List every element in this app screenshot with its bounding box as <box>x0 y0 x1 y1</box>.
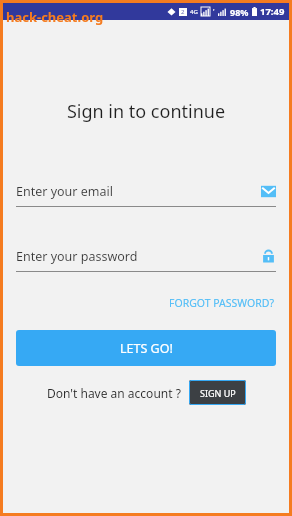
staticText: hack-cheat.org <box>6 8 104 26</box>
staticText: 2 <box>181 8 185 16</box>
staticText: SIGN UP <box>200 387 236 399</box>
staticText: FORGOT PASSWORD? <box>169 296 274 310</box>
button[interactable]: LETS GO! <box>16 330 276 366</box>
staticText: 17:49 <box>260 5 285 18</box>
other: Email <box>261 184 276 199</box>
staticText: Don't have an account ? <box>47 385 181 401</box>
staticText: LETS GO! <box>120 340 173 357</box>
staticText: Sign in to continue <box>16 99 276 124</box>
button[interactable]: FORGOT PASSWORD? <box>167 294 276 312</box>
staticText: ' <box>213 7 215 17</box>
staticText: Enter your email <box>16 183 261 200</box>
other: Password <box>261 249 276 264</box>
staticText: Enter your password <box>16 248 261 265</box>
button[interactable]: SIGN UP <box>189 380 246 405</box>
staticText: 4G <box>190 8 198 16</box>
staticText: 98% <box>230 6 249 18</box>
